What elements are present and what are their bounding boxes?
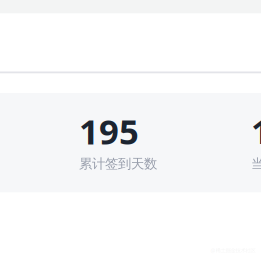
button[interactable]: 1 [251,108,261,172]
staticText: 195 [79,108,139,154]
staticText: 累计签到天数 [79,155,157,172]
staticText: 当月签到天数 [251,155,261,172]
staticText: 1 [251,108,261,154]
button[interactable]: 195 [79,108,157,172]
